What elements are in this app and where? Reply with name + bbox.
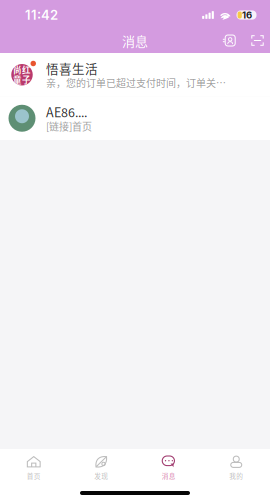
staticText: [链接]首页: [46, 120, 92, 132]
button[interactable]: 发现: [67, 449, 135, 480]
button[interactable]: 首页: [0, 449, 67, 480]
button[interactable]: 扫一扫: [245, 29, 269, 51]
staticText: 发现: [94, 471, 108, 481]
staticText: 悟喜生活: [46, 61, 98, 76]
button[interactable]: 尚红: [0, 53, 270, 96]
button[interactable]: 消息: [135, 449, 202, 480]
staticText: 消息: [162, 471, 176, 481]
button[interactable]: AE86....: [0, 96, 270, 140]
staticText: 首页: [27, 471, 41, 481]
staticText: 亲，您的订单已超过支付时间，订单关…: [46, 77, 226, 88]
staticText: 童子: [13, 75, 31, 84]
staticText: 11:42: [25, 7, 58, 23]
staticText: 我的: [229, 471, 243, 481]
staticText: 尚红: [13, 65, 31, 75]
staticText: 消息: [122, 31, 148, 50]
staticText: AE86....: [46, 105, 87, 119]
button[interactable]: 通讯录: [217, 29, 240, 51]
staticText: 16: [242, 9, 252, 21]
button[interactable]: 我的: [202, 449, 270, 480]
